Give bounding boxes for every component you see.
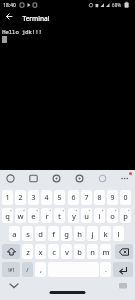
- staticText: b: [77, 247, 82, 257]
- button[interactable]: 9: [107, 190, 118, 205]
- staticText: 2: [18, 193, 23, 203]
- staticText: 5: [57, 193, 62, 203]
- button[interactable]: [2, 244, 20, 259]
- staticText: 7: [84, 193, 89, 203]
- staticText: z: [26, 247, 30, 257]
- button[interactable]: 0: [120, 190, 131, 205]
- staticText: y: [72, 211, 76, 221]
- staticText: h: [77, 229, 82, 239]
- button[interactable]: m: [100, 244, 111, 259]
- button[interactable]: 7: [81, 190, 92, 205]
- staticText: f: [52, 229, 55, 239]
- button[interactable]: 5: [54, 190, 65, 205]
- staticText: u: [84, 211, 89, 221]
- button[interactable]: [0, 170, 135, 188]
- button[interactable]: 8: [94, 190, 105, 205]
- button[interactable]: f: [48, 226, 59, 241]
- button[interactable]: w: [15, 208, 26, 223]
- button[interactable]: o: [107, 208, 118, 223]
- staticText: 1: [5, 193, 10, 203]
- staticText: k: [103, 229, 108, 239]
- button[interactable]: b: [74, 244, 85, 259]
- button[interactable]: 4: [41, 190, 52, 205]
- button[interactable]: c: [48, 244, 59, 259]
- staticText: n: [90, 247, 95, 257]
- staticText: e: [31, 211, 36, 221]
- button[interactable]: 1: [2, 190, 13, 205]
- button[interactable]: r: [41, 208, 52, 223]
- button[interactable]: .: [100, 262, 111, 277]
- staticText: ,: [40, 265, 42, 275]
- staticText: r: [45, 211, 49, 221]
- staticText: p: [123, 211, 128, 221]
- button[interactable]: !#1: [2, 262, 20, 277]
- staticText: 68%: [112, 2, 121, 8]
- button[interactable]: j: [87, 226, 98, 241]
- button[interactable]: l: [113, 226, 124, 241]
- button[interactable]: p: [120, 208, 131, 223]
- button[interactable]: g: [61, 226, 72, 241]
- staticText: i: [98, 211, 101, 221]
- staticText: 8: [97, 193, 102, 203]
- staticText: !#1: [8, 267, 15, 273]
- button[interactable]: k: [100, 226, 111, 241]
- staticText: Terminal: [22, 14, 50, 23]
- staticText: 0: [123, 193, 128, 203]
- button[interactable]: [115, 244, 133, 259]
- button[interactable]: q: [2, 208, 13, 223]
- staticText: 4: [44, 193, 49, 203]
- button[interactable]: [113, 262, 133, 277]
- staticText: j: [91, 229, 94, 239]
- staticText: c: [52, 247, 56, 257]
- button[interactable]: ,: [35, 262, 46, 277]
- staticText: 9: [110, 193, 115, 203]
- button[interactable]: Terminal: [0, 10, 135, 24]
- staticText: t: [58, 211, 61, 221]
- button[interactable]: /: [22, 262, 33, 277]
- staticText: v: [65, 247, 69, 257]
- staticText: a: [12, 229, 17, 239]
- staticText: 3: [31, 193, 36, 203]
- staticText: 18:40: [3, 2, 16, 9]
- staticText: Hello jdk!!!: [2, 28, 42, 35]
- staticText: g: [64, 229, 69, 239]
- staticText: m: [102, 247, 110, 257]
- button[interactable]: 3: [28, 190, 39, 205]
- button[interactable]: i: [94, 208, 105, 223]
- button[interactable]: t: [54, 208, 65, 223]
- staticText: /: [26, 266, 29, 274]
- staticText: 6: [71, 193, 76, 203]
- button[interactable]: h: [74, 226, 85, 241]
- staticText: q: [5, 211, 10, 221]
- staticText: x: [38, 247, 43, 257]
- staticText: l: [117, 229, 120, 239]
- button[interactable]: s: [22, 226, 33, 241]
- button[interactable]: x: [35, 244, 46, 259]
- button[interactable]: y: [68, 208, 79, 223]
- staticText: .: [105, 265, 107, 275]
- button[interactable]: u: [81, 208, 92, 223]
- staticText: s: [26, 229, 30, 239]
- button[interactable]: 6: [68, 190, 79, 205]
- button[interactable]: d: [35, 226, 46, 241]
- button[interactable]: e: [28, 208, 39, 223]
- staticText: d: [38, 229, 43, 239]
- button[interactable]: a: [9, 226, 20, 241]
- button[interactable]: 2: [15, 190, 26, 205]
- staticText: w: [17, 211, 24, 221]
- button[interactable]: z: [22, 244, 33, 259]
- staticText: o: [110, 211, 115, 221]
- button[interactable]: v: [61, 244, 72, 259]
- button[interactable]: n: [87, 244, 98, 259]
